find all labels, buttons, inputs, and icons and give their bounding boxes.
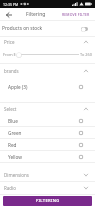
staticText: Yellow	[8, 154, 22, 160]
staticText: 12:35 PM	[3, 2, 19, 7]
staticText: brands	[4, 68, 19, 74]
staticText: REMOVE FILTER	[62, 12, 90, 17]
button[interactable]: Red	[0, 139, 95, 150]
staticText: FILTERING	[36, 198, 60, 204]
button[interactable]: Apple (3)	[0, 78, 95, 95]
staticText: Apple (3)	[8, 84, 28, 90]
button[interactable]: brands	[0, 64, 95, 78]
button[interactable]: Products on stock	[0, 21, 95, 36]
button[interactable]: Blue	[0, 115, 95, 126]
button[interactable]: FILTERING	[3, 196, 92, 206]
button[interactable]: Back	[3, 9, 14, 20]
staticText: Red	[8, 142, 17, 148]
staticText: From $	[3, 52, 16, 57]
button[interactable]: Price	[0, 37, 95, 46]
staticText: Price	[4, 39, 15, 45]
button[interactable]: Select	[0, 103, 95, 115]
staticText: Filtering	[26, 11, 46, 18]
button[interactable]: Radio	[0, 182, 95, 194]
staticText: Products on stock	[2, 25, 43, 32]
staticText: Dimensions	[4, 172, 29, 178]
staticText: Green	[8, 130, 22, 136]
button[interactable]: Dimensions	[0, 169, 95, 181]
button[interactable]: Green	[0, 127, 95, 138]
button[interactable]: REMOVE FILTER	[61, 10, 91, 19]
staticText: Blue	[8, 118, 18, 124]
staticText: To 260	[80, 52, 92, 57]
staticText: Select	[4, 106, 17, 112]
button[interactable]: Yellow	[0, 151, 95, 162]
staticText: Radio	[4, 185, 16, 191]
